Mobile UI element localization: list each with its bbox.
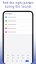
button[interactable]: > — [4, 27, 32, 30]
button[interactable]: > — [4, 23, 32, 26]
button[interactable]: > — [4, 19, 32, 23]
button[interactable]: Send — [25, 60, 29, 62]
button[interactable]: > — [4, 30, 32, 34]
staticText: during the launch — [4, 5, 31, 8]
staticText: Find the right person — [2, 1, 33, 5]
staticText: > — [30, 24, 31, 26]
button[interactable]: > — [4, 15, 32, 19]
